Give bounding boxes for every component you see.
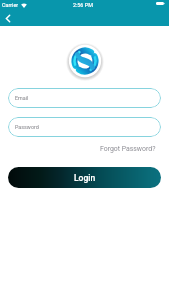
button[interactable]: Login (8, 167, 161, 188)
button[interactable]: Email (8, 88, 161, 108)
button[interactable]: Password (8, 117, 161, 137)
staticText: Forgot Password? (100, 145, 156, 153)
staticText: Carrier (2, 2, 19, 8)
button[interactable]: Forgot Password? (100, 145, 156, 153)
staticText: Login (74, 173, 96, 183)
staticText: 2:56 PM (73, 2, 93, 8)
staticText: Email (15, 95, 29, 101)
button[interactable]: Back (1, 12, 14, 25)
staticText: Password (15, 124, 39, 130)
